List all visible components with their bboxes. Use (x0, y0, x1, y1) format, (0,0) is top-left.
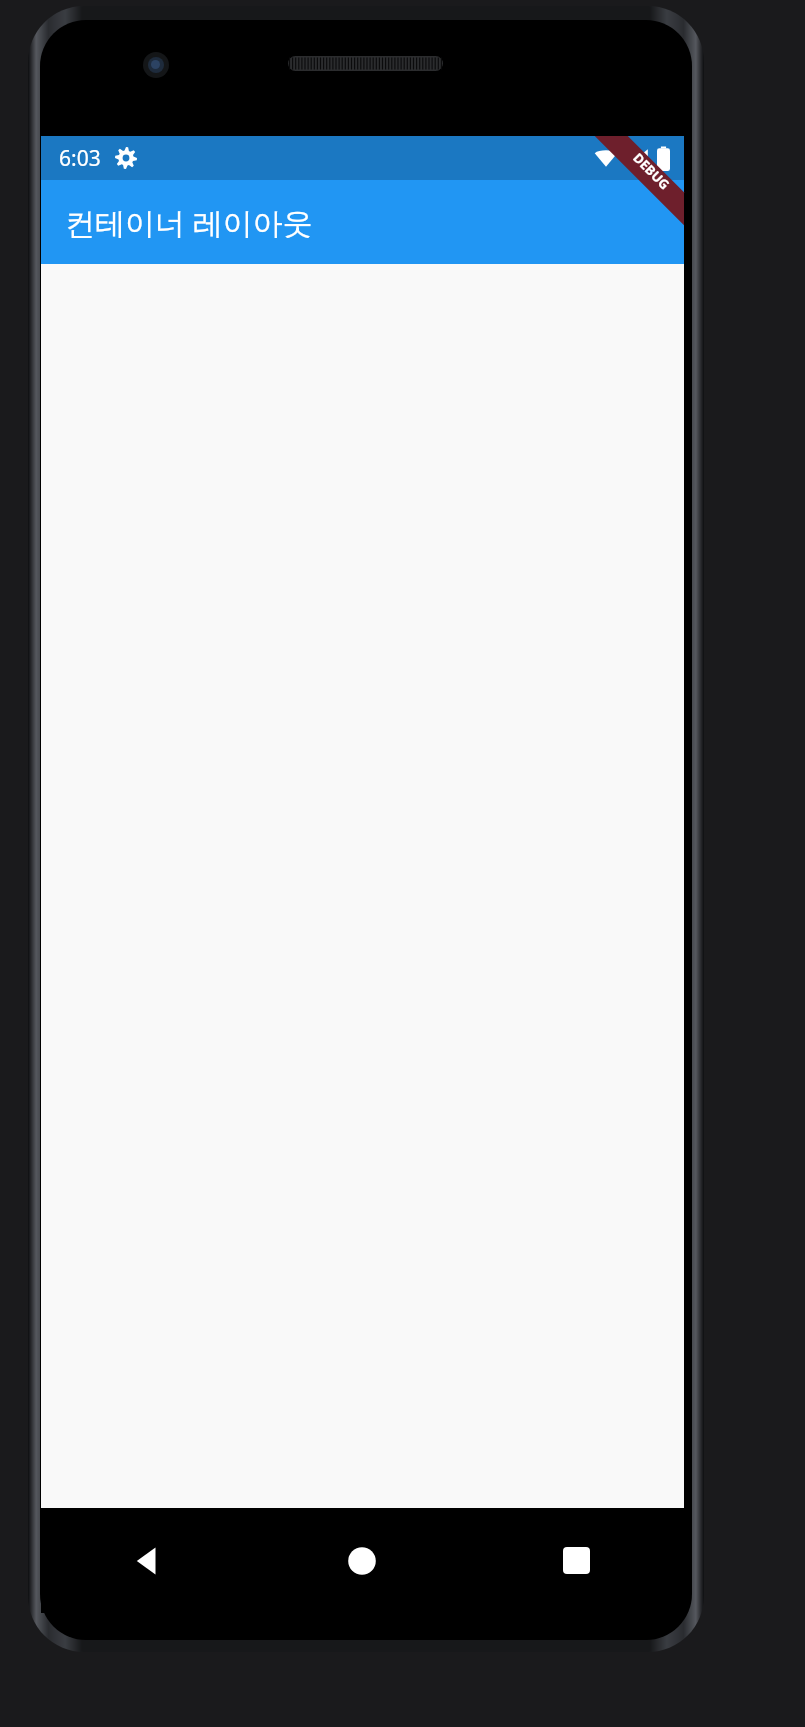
staticText: DEBUG (629, 149, 674, 193)
button[interactable]: Home (255, 1508, 469, 1613)
button[interactable]: Back (41, 1508, 255, 1613)
staticText: 컨테이너 레이아웃 (65, 202, 313, 243)
button[interactable]: Recent apps (469, 1508, 684, 1613)
staticText: 6:03 (59, 144, 101, 173)
